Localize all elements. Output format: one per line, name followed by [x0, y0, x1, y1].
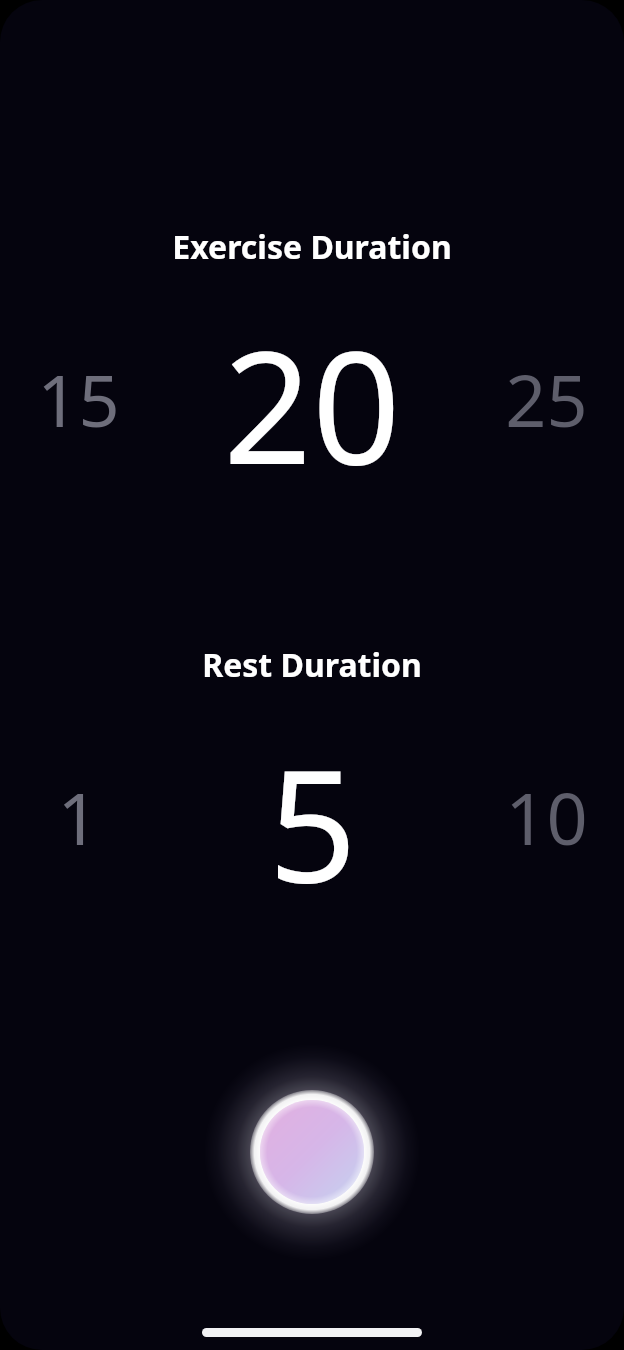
button[interactable]: 5 [192, 716, 432, 916]
staticText: 15 [37, 350, 120, 446]
staticText: 1 [57, 768, 99, 864]
button[interactable]: 10 [476, 768, 616, 864]
staticText: 25 [505, 350, 588, 446]
button[interactable]: 1 [8, 768, 148, 864]
button[interactable]: 20 [192, 298, 432, 498]
button[interactable]: 15 [8, 350, 148, 446]
staticText: Exercise Duration [172, 225, 452, 269]
button[interactable]: 25 [476, 350, 616, 446]
button[interactable]: Start workout [202, 1042, 422, 1262]
staticText: Rest Duration [202, 643, 422, 687]
staticText: 5 [268, 716, 357, 916]
staticText: 20 [223, 298, 401, 498]
staticText: 10 [505, 768, 588, 864]
